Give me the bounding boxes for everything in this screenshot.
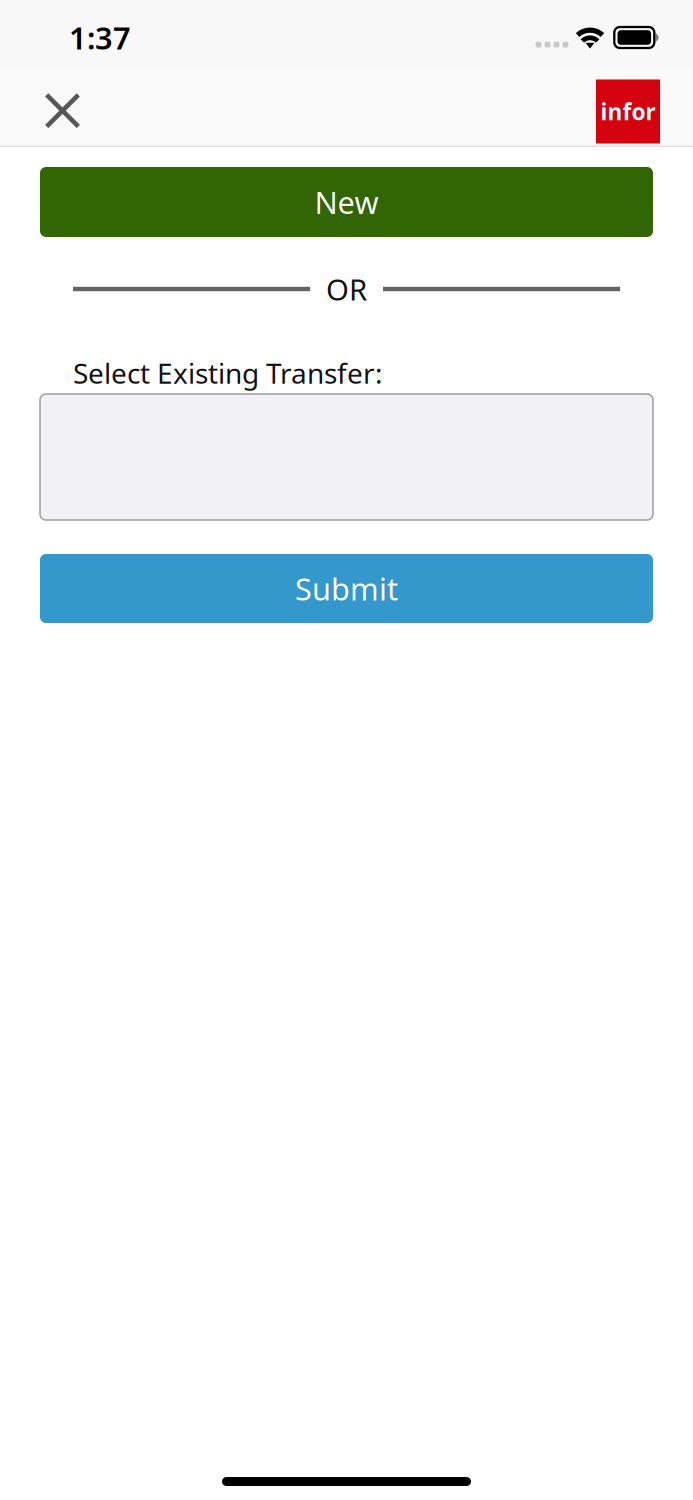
- button[interactable]: Infor home: [596, 71, 660, 143]
- staticText: Submit: [295, 568, 398, 609]
- button[interactable]: New: [40, 167, 653, 237]
- button[interactable]: Select existing transfer: [40, 394, 653, 520]
- button[interactable]: Submit: [40, 554, 653, 623]
- staticText: New: [314, 182, 378, 222]
- staticText: infor: [600, 96, 655, 126]
- staticText: OR: [326, 269, 367, 308]
- button[interactable]: Close: [40, 71, 85, 129]
- staticText: Select Existing Transfer:: [73, 354, 383, 392]
- staticText: 1:37: [69, 17, 131, 58]
